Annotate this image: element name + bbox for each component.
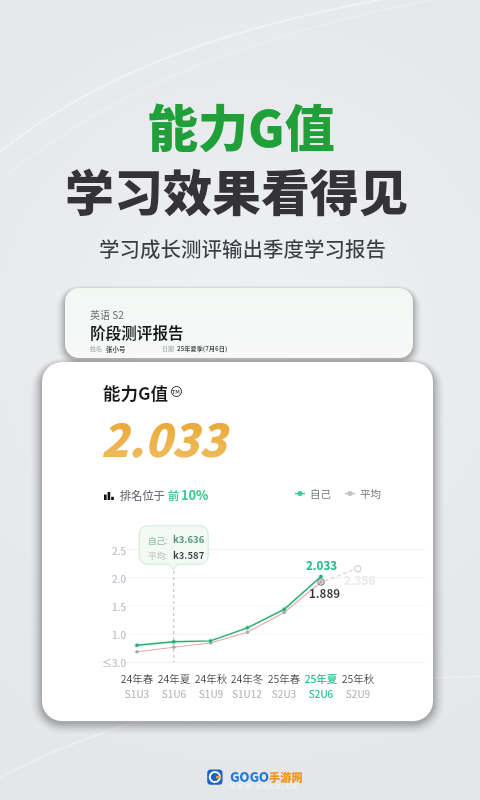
- staticText: 2.356: [344, 572, 376, 589]
- staticText: S1U12: [228, 686, 266, 700]
- staticText: 张小号: [106, 344, 126, 353]
- staticText: 阶段测评报告: [90, 321, 184, 344]
- staticText: 2.033: [306, 557, 338, 574]
- staticText: S1U6: [155, 686, 193, 700]
- staticText: 平均:: [148, 549, 168, 561]
- staticText: k3.636: [173, 532, 205, 546]
- staticText: ≤3.0: [98, 655, 126, 669]
- staticText: 2.033: [101, 405, 227, 470]
- staticText: 1.0: [98, 627, 126, 641]
- staticText: 1.889: [309, 585, 341, 602]
- staticText: 24年冬: [228, 671, 266, 686]
- button[interactable]: 英语 S2: [65, 288, 413, 358]
- staticText: 自己: [310, 486, 331, 501]
- staticText: GOGO: [230, 767, 269, 786]
- staticText: S1U9: [192, 686, 230, 700]
- staticText: 学习效果看得见: [65, 154, 409, 225]
- staticText: WWW.GOGO.CN: [230, 782, 299, 791]
- staticText: S2U3: [265, 686, 303, 700]
- staticText: 前: [168, 487, 180, 503]
- staticText: 学习成长测评输出季度学习报告: [99, 233, 386, 263]
- staticText: 25年春: [265, 671, 303, 686]
- staticText: S2U6: [302, 686, 340, 700]
- staticText: 日期: [162, 344, 175, 353]
- staticText: 25年夏季(7月6日): [177, 344, 228, 353]
- staticText: 手游网: [269, 769, 303, 785]
- staticText: 英语 S2: [90, 307, 124, 321]
- staticText: S1U3: [118, 686, 156, 700]
- staticText: 1.5: [98, 599, 126, 613]
- staticText: 平均: [360, 486, 381, 501]
- staticText: S2U9: [339, 686, 377, 700]
- staticText: 能力G值: [148, 89, 335, 161]
- staticText: 24年秋: [192, 671, 230, 686]
- staticText: 2.5: [98, 543, 126, 557]
- staticText: 25年夏: [302, 671, 340, 686]
- staticText: 排名位于: [120, 487, 165, 503]
- staticText: 自己:: [148, 534, 168, 546]
- staticText: 25年秋: [339, 671, 377, 686]
- staticText: 24年夏: [155, 671, 193, 686]
- staticText: 姓名: [90, 344, 103, 353]
- staticText: 能力G值: [103, 380, 169, 405]
- staticText: k3.587: [173, 548, 205, 562]
- staticText: 2.0: [98, 571, 126, 585]
- staticText: 24年春: [118, 671, 156, 686]
- staticText: TM: [172, 388, 180, 396]
- staticText: 10%: [181, 485, 209, 504]
